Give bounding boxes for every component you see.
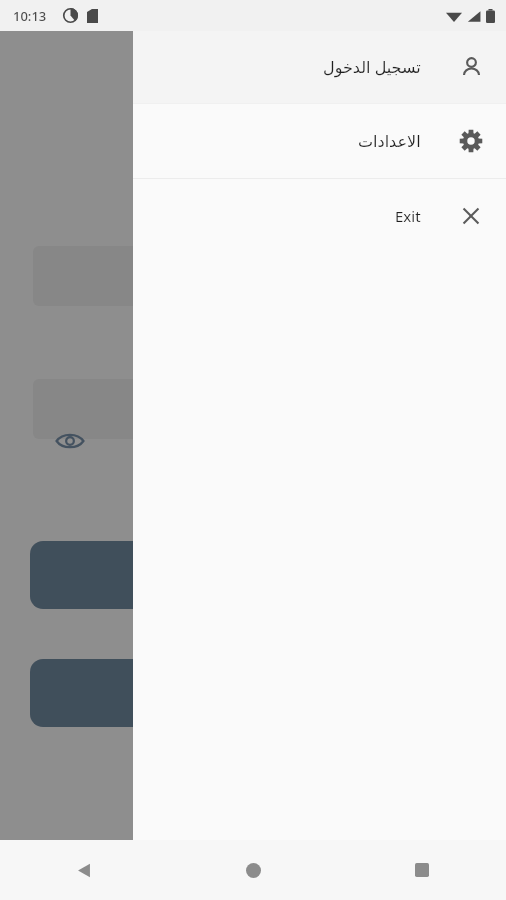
button[interactable]: تسجيل الدخول — [133, 31, 506, 103]
button[interactable]: الاعدادات — [133, 104, 506, 178]
staticText: 10:13 — [13, 7, 47, 25]
button[interactable]: Recents — [396, 844, 448, 896]
button[interactable]: Home — [227, 844, 279, 896]
button[interactable] — [30, 541, 298, 609]
staticText: تسجيل الدخول — [323, 56, 421, 78]
button[interactable]: Back — [58, 844, 110, 896]
staticText: Exit — [395, 206, 421, 226]
staticText: الاعدادات — [358, 132, 421, 151]
button[interactable]: Close drawer — [0, 31, 133, 840]
button[interactable]: Exit — [133, 179, 506, 253]
button[interactable] — [30, 659, 298, 727]
